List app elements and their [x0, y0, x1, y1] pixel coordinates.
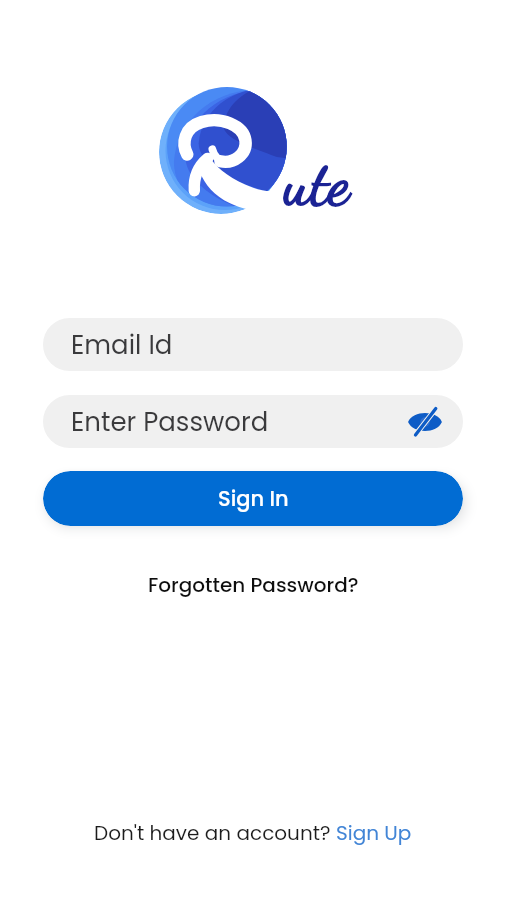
button[interactable]: Show password: [405, 402, 445, 442]
staticText: Don't have an account?: [94, 819, 336, 847]
button[interactable]: Forgotten Password?: [140, 568, 367, 602]
staticText: Sign Up: [336, 819, 412, 847]
button[interactable]: Enter Password: [43, 395, 463, 448]
button[interactable]: Sign In: [43, 471, 463, 526]
staticText: Forgotten Password?: [148, 571, 359, 599]
staticText: Sign In: [218, 484, 289, 513]
staticText: ute: [284, 146, 350, 220]
button[interactable]: Email Id: [43, 318, 463, 371]
staticText: Enter Password: [71, 404, 269, 440]
staticText: Email Id: [71, 327, 173, 363]
button[interactable]: Sign Up: [336, 819, 412, 847]
